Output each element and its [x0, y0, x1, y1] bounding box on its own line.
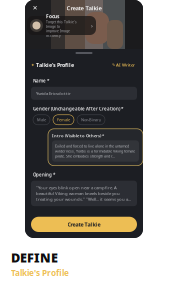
staticText: ✎ — [112, 63, 115, 67]
staticText: Talkie's Profile — [35, 61, 74, 69]
staticText: DEFINE — [11, 249, 58, 266]
staticText: Talkie's Profile — [11, 267, 69, 279]
button[interactable]: Non-Binary — [77, 115, 105, 125]
staticText: › — [91, 21, 93, 29]
staticText: Exiled and forced to live alone in the u… — [55, 143, 135, 159]
staticText: Name * — [33, 78, 49, 84]
staticText: Female — [57, 117, 70, 122]
staticText: Focus — [46, 13, 59, 20]
button[interactable]: Close — [29, 2, 41, 14]
button[interactable]: Focus — [27, 16, 96, 35]
button[interactable]: Create Talkie — [31, 217, 137, 232]
button[interactable]: ✎ — [110, 61, 137, 69]
staticText: Opening * — [33, 172, 55, 178]
staticText: ✕ — [32, 4, 37, 11]
button[interactable]: Male — [33, 115, 50, 125]
staticText: "Your eyes blink open near a campfire. A… — [36, 185, 131, 202]
staticText: Male — [37, 117, 46, 122]
staticText: Create Talkie — [67, 221, 100, 228]
staticText: Non-Binary — [81, 117, 101, 122]
staticText: Intro (Visible to Others) * — [52, 133, 104, 138]
staticText: ✦ — [31, 62, 35, 67]
staticText: Create Talkie — [66, 4, 101, 12]
staticText: Target this Talkie's Image to improve Im… — [46, 20, 77, 38]
staticText: Gender (Unchangeable After Creation) * — [33, 106, 123, 112]
staticText: Yseida Ericsdottir — [36, 90, 71, 96]
staticText: AI Writer — [116, 62, 135, 68]
button[interactable]: Female — [53, 115, 74, 125]
